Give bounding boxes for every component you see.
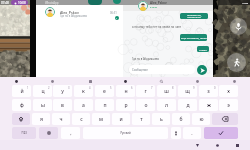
button[interactable]: т — [132, 113, 150, 125]
button[interactable]: Stickers — [48, 77, 56, 85]
button[interactable]: й — [12, 85, 31, 97]
staticText: о — [144, 102, 148, 109]
button[interactable]: я — [32, 113, 50, 125]
button[interactable]: Emoji — [39, 127, 58, 139]
button[interactable]: Home — [212, 140, 222, 150]
staticText: е — [103, 88, 106, 95]
staticText: WhatsApp — [45, 1, 59, 5]
button[interactable]: Settings — [12, 77, 20, 85]
button[interactable]: у — [53, 85, 72, 97]
button[interactable]: а — [74, 99, 93, 111]
button[interactable]: н — [116, 85, 135, 97]
button[interactable]: ч — [52, 113, 70, 125]
staticText: 2 — [48, 86, 50, 90]
button[interactable]: Themes — [230, 77, 238, 85]
staticText: с — [80, 116, 83, 123]
button[interactable]: Recents — [232, 140, 242, 150]
staticText: 0 — [214, 86, 216, 90]
staticText: ь — [160, 116, 163, 123]
staticText: в — [61, 102, 64, 109]
staticText: ш — [164, 88, 169, 95]
button[interactable]: Send — [197, 65, 207, 75]
staticText: у — [61, 88, 64, 95]
button[interactable]: Русский — [83, 127, 168, 139]
button[interactable]: з — [199, 85, 218, 97]
button[interactable]: о — [136, 99, 155, 111]
staticText: а почему тебя нет на связи на чате — [132, 25, 182, 29]
staticText: Alex_Pskov — [60, 10, 79, 15]
button[interactable]: ф — [12, 99, 31, 111]
staticText: 3 — [68, 86, 70, 90]
staticText: 07:48 — [1, 1, 9, 5]
staticText: Русский — [120, 131, 131, 135]
button[interactable]: с — [72, 113, 90, 125]
button[interactable]: GIF — [86, 77, 94, 85]
button[interactable]: Shift — [12, 113, 30, 125]
button[interactable]: х — [219, 85, 238, 97]
button[interactable]: б — [172, 113, 190, 125]
staticText: Сообщение — [132, 68, 148, 72]
staticText: в сети — [150, 5, 158, 8]
staticText: н — [124, 88, 128, 95]
button[interactable]: п — [95, 99, 114, 111]
staticText: Клево — [199, 48, 207, 51]
button[interactable]: ш — [157, 85, 176, 97]
button[interactable]: Emoji — [121, 77, 129, 85]
button[interactable]: ?123 — [12, 127, 36, 139]
button[interactable]: Enter — [204, 127, 238, 139]
button[interactable]: Voice input — [171, 127, 181, 139]
staticText: 10:08 — [18, 1, 26, 5]
button[interactable]: Backspace — [212, 113, 238, 125]
button[interactable]: ю — [192, 113, 210, 125]
button[interactable]: ь — [152, 113, 170, 125]
staticText: щ — [185, 88, 190, 95]
button[interactable]: е — [95, 85, 114, 97]
button[interactable]: Clipboard — [193, 77, 201, 85]
button[interactable]: . — [183, 127, 201, 139]
button[interactable]: Сообщение — [129, 65, 195, 74]
button[interactable]: р — [116, 99, 135, 111]
button[interactable]: Alex_Pskov avatar — [45, 7, 55, 17]
button[interactable]: щ — [178, 85, 197, 97]
staticText: д — [186, 102, 190, 109]
button[interactable]: к — [74, 85, 93, 97]
staticText: й — [20, 88, 24, 95]
button[interactable]: м — [92, 113, 110, 125]
staticText: 06:51 — [110, 11, 117, 15]
staticText: 4 — [89, 86, 91, 90]
button[interactable]: Еще отправлю, пиши — [180, 34, 207, 41]
staticText: Alex_Pskov — [150, 1, 167, 5]
staticText: 6 — [131, 86, 133, 90]
button[interactable]: и — [112, 113, 130, 125]
staticText: 1 — [116, 17, 118, 20]
button[interactable]: э — [219, 99, 238, 111]
staticText: б — [179, 116, 183, 123]
button[interactable]: Ongoing call — [11, 0, 28, 5]
button[interactable] — [36, 5, 123, 19]
button[interactable]: д — [178, 99, 197, 111]
button[interactable]: л — [157, 99, 176, 111]
button[interactable]: Mute — [230, 18, 247, 35]
button[interactable]: , — [61, 127, 80, 139]
staticText: р — [124, 102, 128, 109]
button[interactable]: Клево — [197, 46, 209, 52]
staticText: ы — [41, 102, 45, 109]
staticText: Нормально, нормально — [180, 13, 208, 19]
staticText: Где ты в Абдрияшево — [132, 57, 160, 61]
button[interactable]: Нормально, нормально — [180, 13, 208, 19]
button[interactable]: ц — [33, 85, 52, 97]
staticText: э — [227, 102, 230, 109]
button[interactable]: Search — [157, 77, 165, 85]
staticText: 9 — [193, 86, 195, 90]
button[interactable]: г — [136, 85, 155, 97]
button[interactable]: ж — [199, 99, 218, 111]
button[interactable]: Back — [192, 140, 202, 150]
button[interactable]: Speaker — [227, 53, 246, 72]
staticText: ц — [41, 88, 45, 95]
staticText: 5 — [110, 86, 112, 90]
staticText: 8 — [172, 86, 174, 90]
button[interactable]: в — [53, 99, 72, 111]
staticText: п — [103, 102, 107, 109]
staticText: , — [70, 130, 72, 137]
button[interactable]: ы — [33, 99, 52, 111]
